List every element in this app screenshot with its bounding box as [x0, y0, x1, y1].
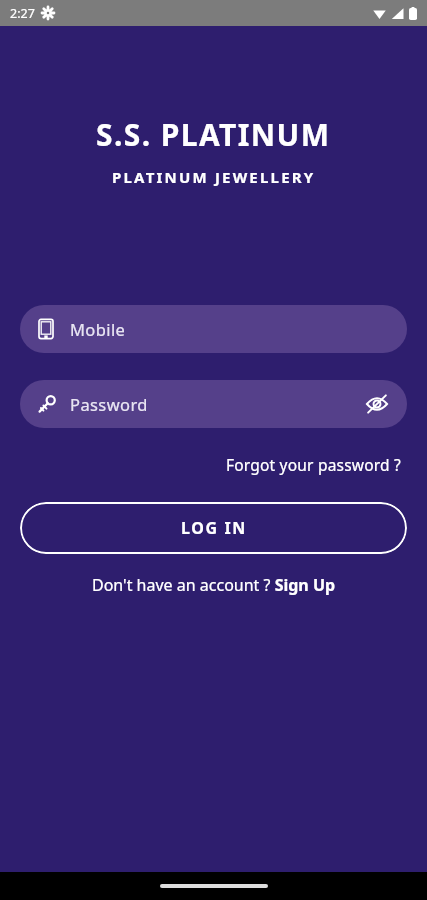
button[interactable]: Forgot your password ?	[220, 450, 407, 479]
button[interactable]: Show password	[361, 388, 393, 420]
button[interactable]: LOG IN	[20, 502, 407, 554]
staticText: S.S. PLATINUM	[96, 114, 331, 155]
button[interactable]: Password	[20, 380, 407, 428]
staticText: Forgot your password ?	[226, 454, 401, 475]
staticText: 2:27	[10, 5, 35, 22]
button[interactable]: Don't have an account ? Sign Up	[84, 570, 344, 600]
staticText: PLATINUM JEWELLERY	[112, 167, 316, 187]
staticText: LOG IN	[181, 517, 247, 539]
staticText: Don't have an account ? Sign Up	[92, 574, 336, 596]
staticText: Mobile	[70, 318, 126, 340]
button[interactable]: Mobile	[20, 305, 407, 353]
staticText: Password	[70, 393, 148, 415]
